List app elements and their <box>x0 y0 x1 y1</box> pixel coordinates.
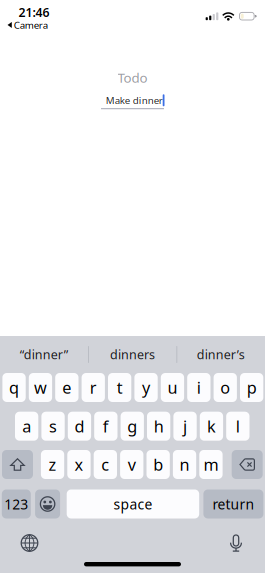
staticText: “dinner” <box>20 346 69 363</box>
button[interactable]: Return <box>203 489 263 518</box>
button[interactable]: c <box>94 450 117 479</box>
staticText: z <box>48 454 56 475</box>
button[interactable]: j <box>173 412 197 441</box>
button[interactable]: w <box>29 373 52 402</box>
staticText: dinner’s <box>197 346 245 363</box>
button[interactable]: q <box>2 373 26 402</box>
button[interactable]: i <box>187 373 210 402</box>
button[interactable]: z <box>41 450 64 479</box>
staticText: Todo <box>117 69 147 86</box>
button[interactable]: k <box>200 412 223 441</box>
staticText: v <box>128 454 136 475</box>
button[interactable]: Shift <box>2 450 33 479</box>
button[interactable]: u <box>161 373 184 402</box>
button[interactable]: f <box>94 412 117 441</box>
staticText: dinners <box>110 346 155 363</box>
staticText: g <box>127 415 137 437</box>
button[interactable]: v <box>120 450 143 479</box>
button[interactable]: Delete <box>232 450 263 479</box>
staticText: t <box>117 377 123 398</box>
button[interactable]: m <box>199 450 223 479</box>
button[interactable]: dinners <box>88 336 177 373</box>
staticText: w <box>34 377 47 398</box>
staticText: n <box>180 454 190 475</box>
button[interactable]: l <box>226 412 249 441</box>
staticText: b <box>153 454 163 475</box>
staticText: Make dinner <box>106 94 163 107</box>
staticText: 123 <box>4 495 28 513</box>
button[interactable]: y <box>134 373 158 402</box>
button[interactable]: h <box>147 412 170 441</box>
button[interactable]: e <box>55 373 78 402</box>
button[interactable]: p <box>240 373 263 402</box>
button[interactable]: dinner’s <box>177 336 265 373</box>
button[interactable]: “dinner” <box>0 336 88 373</box>
staticText: s <box>49 415 57 437</box>
staticText: 21:46 <box>18 4 49 20</box>
staticText: l <box>236 415 240 437</box>
staticText: q <box>9 377 19 398</box>
button[interactable]: r <box>82 373 105 402</box>
staticText: d <box>74 415 84 437</box>
button[interactable]: a <box>15 412 38 441</box>
button[interactable]: b <box>146 450 170 479</box>
staticText: f <box>103 415 109 437</box>
staticText: c <box>101 454 109 475</box>
button[interactable]: Next keyboard <box>20 533 39 552</box>
staticText: k <box>207 415 216 437</box>
staticText: x <box>74 454 83 475</box>
staticText: j <box>183 415 187 437</box>
staticText: e <box>62 377 71 398</box>
staticText: space <box>113 495 152 513</box>
staticText: return <box>212 495 254 513</box>
button[interactable]: o <box>214 373 237 402</box>
button[interactable]: d <box>68 412 91 441</box>
button[interactable]: n <box>173 450 196 479</box>
button[interactable]: space <box>67 489 199 518</box>
staticText: Camera <box>14 18 48 31</box>
staticText: m <box>203 454 218 475</box>
staticText: a <box>22 415 31 437</box>
button[interactable]: Emoji <box>35 489 60 518</box>
staticText: r <box>90 377 97 398</box>
staticText: p <box>247 377 257 398</box>
staticText: y <box>142 377 150 398</box>
staticText: o <box>220 377 230 398</box>
button[interactable]: Numbers <box>2 489 31 518</box>
button[interactable]: s <box>41 412 65 441</box>
button[interactable]: t <box>108 373 131 402</box>
staticText: h <box>154 415 164 437</box>
button[interactable]: x <box>67 450 91 479</box>
button[interactable]: Dictation <box>228 533 244 552</box>
staticText: i <box>197 377 201 398</box>
button[interactable]: g <box>121 412 144 441</box>
staticText: u <box>167 377 177 398</box>
